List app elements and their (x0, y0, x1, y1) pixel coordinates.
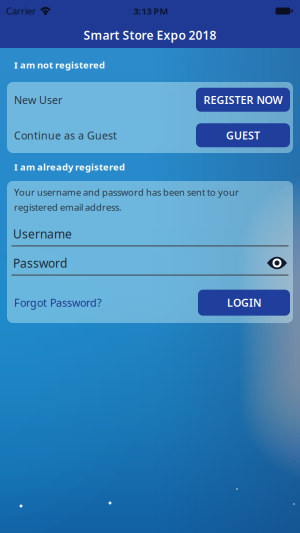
staticText: GUEST (226, 128, 260, 142)
button[interactable]: Forgot Password? (14, 296, 102, 310)
staticText: registered email address. (14, 201, 122, 213)
button[interactable]: REGISTER NOW (196, 88, 290, 112)
staticText: REGISTER NOW (203, 93, 282, 107)
staticText: Continue as a Guest (14, 128, 117, 142)
staticText: Carrier (6, 5, 36, 17)
staticText: I am already registered (14, 161, 125, 173)
staticText: Smart Store Expo 2018 (83, 27, 216, 43)
staticText: New User (14, 93, 62, 107)
button[interactable]: LOGIN (198, 290, 290, 316)
staticText: I am not registered (14, 59, 105, 71)
staticText: Username (13, 226, 72, 242)
staticText: Forgot Password? (14, 296, 102, 310)
button[interactable]: GUEST (196, 123, 290, 147)
staticText: 3:13 PM (133, 5, 168, 17)
staticText: LOGIN (227, 296, 261, 310)
staticText: Your username and password has been sent… (14, 186, 239, 198)
staticText: Password (13, 255, 67, 271)
